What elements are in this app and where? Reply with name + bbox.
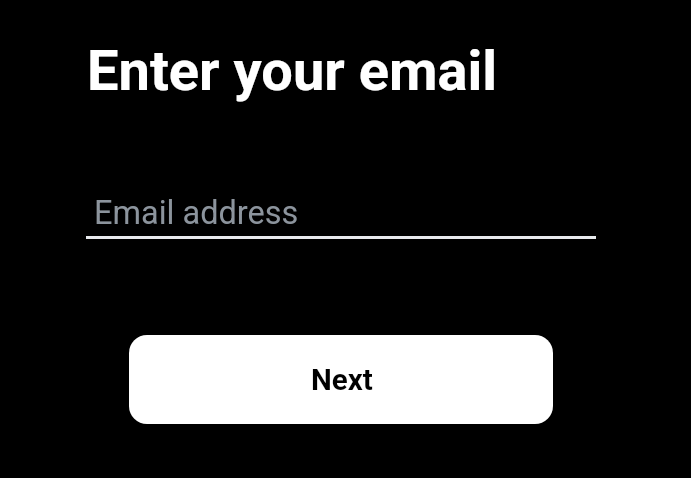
staticText: Email address xyxy=(94,194,299,232)
button[interactable]: Next xyxy=(129,335,553,424)
staticText: Next xyxy=(311,363,373,398)
button[interactable]: Email address input field xyxy=(86,186,596,239)
staticText: Enter your email xyxy=(87,38,498,104)
